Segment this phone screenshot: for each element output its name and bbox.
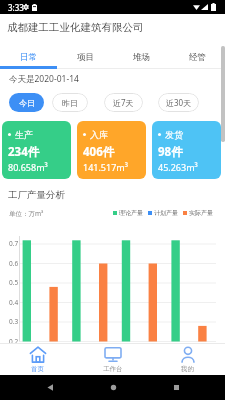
button[interactable]: 堆场 xyxy=(113,41,169,69)
staticText: 0.3 xyxy=(9,317,19,326)
staticText: 0.5 xyxy=(9,278,19,287)
staticText: 首页 xyxy=(31,365,44,373)
staticText: 0.6 xyxy=(9,259,19,268)
button[interactable]: 今日 xyxy=(9,93,44,112)
staticText: 0.4 xyxy=(9,298,19,307)
staticText: 工作台 xyxy=(103,365,123,373)
button[interactable]: 昨日 xyxy=(52,93,88,112)
button[interactable]: 近7天 xyxy=(104,93,143,112)
staticText: 发货 xyxy=(165,129,183,140)
staticText: 堆场 xyxy=(133,52,150,63)
staticText: 141.517m³ xyxy=(83,161,128,173)
staticText: 我的 xyxy=(181,365,194,373)
staticText: 98件 xyxy=(158,144,183,160)
staticText: 今天是2020-01-14 xyxy=(9,73,79,85)
staticText: 0.7 xyxy=(9,239,19,248)
staticText: 工厂产量分析 xyxy=(8,189,65,201)
other: Home xyxy=(109,383,118,392)
staticText: 今日 xyxy=(19,98,35,108)
staticText: 45.263m³ xyxy=(158,161,198,173)
staticText: 80.658m³ xyxy=(8,161,48,173)
button[interactable]: 日常 xyxy=(0,41,57,69)
staticText: 项目 xyxy=(77,52,94,63)
button[interactable]: 发货 xyxy=(152,121,221,179)
staticText: 406件 xyxy=(83,144,115,160)
staticText: 234件 xyxy=(8,144,40,160)
staticText: 日常 xyxy=(20,52,37,63)
button[interactable]: 工作台 xyxy=(75,343,150,375)
other: Recents xyxy=(172,383,181,392)
staticText: 0.2 xyxy=(9,337,19,346)
staticText: 生产 xyxy=(15,129,33,140)
button[interactable]: 生产 xyxy=(2,121,71,179)
staticText: 入库 xyxy=(90,129,108,140)
staticText: 计划产量 xyxy=(154,209,178,217)
staticText: 实际产量 xyxy=(189,209,213,217)
other: Back xyxy=(46,383,55,392)
button[interactable]: 项目 xyxy=(57,41,113,69)
staticText: 3:33 xyxy=(8,2,24,13)
button[interactable]: 首页 xyxy=(0,343,75,375)
staticText: 近7天 xyxy=(113,97,134,108)
button[interactable]: 入库 xyxy=(77,121,146,179)
button[interactable]: 经管 xyxy=(169,41,225,69)
staticText: 近30天 xyxy=(166,97,192,108)
button[interactable]: 近30天 xyxy=(158,93,199,112)
staticText: 理论产量 xyxy=(119,209,143,217)
staticText: 单位：万m³ xyxy=(9,209,44,218)
staticText: 成都建工工业化建筑有限公司 xyxy=(7,21,144,34)
staticText: 昨日 xyxy=(62,98,78,108)
staticText: 经管 xyxy=(189,52,206,63)
button[interactable]: 我的 xyxy=(150,343,225,375)
